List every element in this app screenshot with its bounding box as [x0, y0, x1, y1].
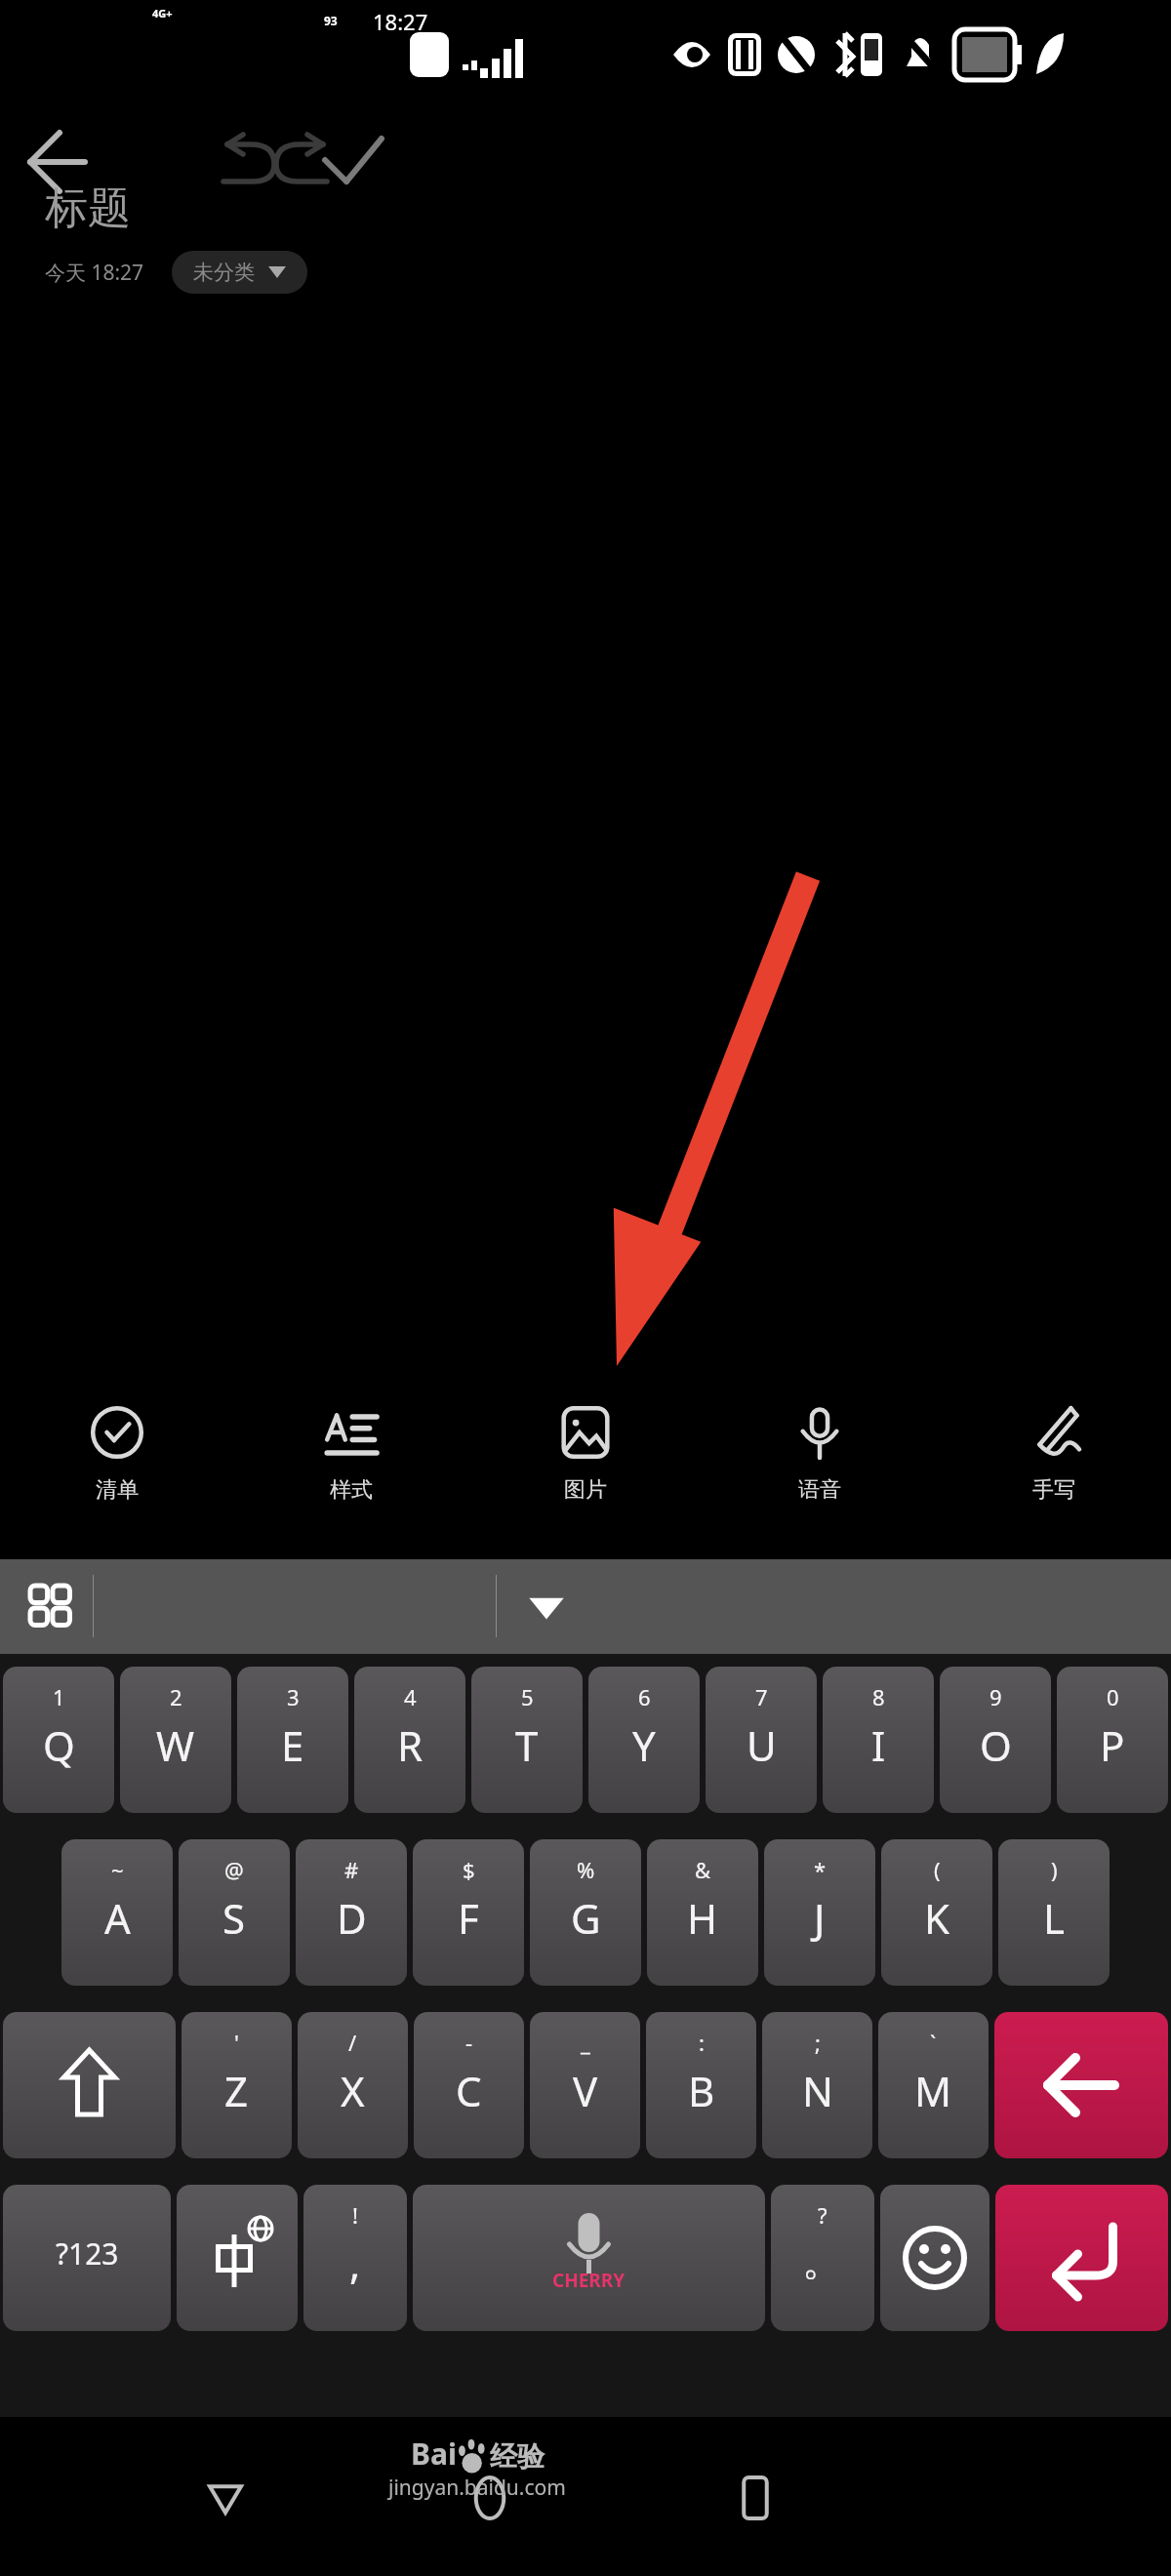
staticText: &: [695, 1855, 711, 1884]
button[interactable]: @: [179, 1839, 290, 1986]
staticText: 7: [755, 1682, 768, 1711]
staticText: !: [352, 2200, 358, 2230]
staticText: 5: [521, 1682, 534, 1711]
staticText: HD: [138, 14, 155, 29]
button[interactable]: 图片: [468, 1390, 703, 1556]
button[interactable]: Recents: [716, 2459, 794, 2537]
staticText: *: [814, 1855, 827, 1884]
button[interactable]: 4: [354, 1667, 465, 1813]
staticText: 标题: [45, 181, 131, 235]
staticText: 样式: [330, 1476, 373, 1504]
button[interactable]: 手写: [937, 1390, 1171, 1556]
staticText: ': [234, 2028, 239, 2057]
staticText: ?: [818, 2200, 828, 2230]
button[interactable]: $: [413, 1839, 524, 1986]
button[interactable]: 2: [120, 1667, 231, 1813]
staticText: 2: [170, 1682, 182, 1711]
button[interactable]: 5: [471, 1667, 583, 1813]
staticText: 0: [1107, 1682, 1119, 1711]
button[interactable]: *: [764, 1839, 875, 1986]
staticText: 4: [404, 1682, 417, 1711]
staticText: :: [699, 2028, 705, 2057]
button[interactable]: #: [296, 1839, 407, 1986]
staticText: 。: [802, 2235, 843, 2287]
button[interactable]: !: [303, 2185, 407, 2331]
button[interactable]: Back: [20, 124, 96, 200]
staticText: T: [515, 1717, 539, 1773]
button[interactable]: 7: [706, 1667, 817, 1813]
staticText: $: [463, 1855, 475, 1884]
staticText: W: [156, 1717, 195, 1773]
staticText: @: [224, 1855, 244, 1884]
staticText: V: [573, 2063, 598, 2118]
button[interactable]: 清单: [0, 1390, 234, 1556]
staticText: 9: [989, 1682, 1002, 1711]
button[interactable]: Home: [451, 2459, 529, 2537]
staticText: F: [458, 1890, 479, 1946]
staticText: H: [687, 1890, 718, 1946]
staticText: %: [577, 1855, 595, 1884]
button[interactable]: %: [530, 1839, 641, 1986]
staticText: 1: [53, 1682, 65, 1711]
button[interactable]: (: [881, 1839, 992, 1986]
button[interactable]: Enter: [995, 2185, 1168, 2331]
button[interactable]: ?123: [3, 2185, 171, 2331]
button[interactable]: ;: [762, 2012, 872, 2158]
staticText: A: [104, 1890, 131, 1946]
staticText: L: [1043, 1890, 1066, 1946]
button[interactable]: Hide keyboard: [521, 1581, 572, 1631]
button[interactable]: Back: [186, 2459, 264, 2537]
staticText: 手写: [1032, 1476, 1075, 1504]
button[interactable]: 样式: [234, 1390, 468, 1556]
button[interactable]: 未分类: [172, 251, 307, 294]
staticText: 语音: [798, 1476, 841, 1504]
staticText: 18:27: [373, 7, 428, 36]
button[interactable]: Undo: [211, 124, 287, 200]
button[interactable]: Emoji: [880, 2185, 989, 2331]
staticText: Y: [632, 1717, 656, 1773]
button[interactable]: 3: [237, 1667, 348, 1813]
staticText: CHERRY: [552, 2268, 626, 2293]
button[interactable]: 1: [3, 1667, 114, 1813]
staticText: B: [688, 2063, 715, 2118]
staticText: D: [337, 1890, 367, 1946]
button[interactable]: :: [646, 2012, 756, 2158]
button[interactable]: ~: [61, 1839, 173, 1986]
staticText: M: [914, 2063, 952, 2118]
staticText: ?123: [56, 2234, 119, 2274]
button[interactable]: Shift: [3, 2012, 176, 2158]
staticText: I: [871, 1717, 886, 1773]
staticText: -: [465, 2028, 473, 2057]
button[interactable]: 9: [940, 1667, 1051, 1813]
button[interactable]: -: [414, 2012, 524, 2158]
button[interactable]: ): [998, 1839, 1110, 1986]
button[interactable]: 语音: [703, 1390, 937, 1556]
button[interactable]: Language: [177, 2185, 298, 2331]
staticText: /: [348, 2028, 357, 2057]
staticText: 93: [324, 13, 338, 28]
staticText: 8: [872, 1682, 885, 1711]
staticText: P: [1100, 1717, 1125, 1773]
staticText: 清单: [96, 1476, 139, 1504]
button[interactable]: ': [182, 2012, 292, 2158]
staticText: Q: [43, 1717, 75, 1773]
button[interactable]: `: [878, 2012, 989, 2158]
button[interactable]: 6: [588, 1667, 700, 1813]
button[interactable]: Space: [413, 2185, 765, 2331]
staticText: 经验: [490, 2439, 545, 2474]
button[interactable]: ?: [771, 2185, 874, 2331]
staticText: #: [344, 1855, 359, 1884]
staticText: N: [802, 2063, 833, 2118]
button[interactable]: &: [647, 1839, 758, 1986]
button[interactable]: 0: [1057, 1667, 1168, 1813]
button[interactable]: Backspace: [994, 2012, 1168, 2158]
button[interactable]: Done: [314, 124, 390, 200]
button[interactable]: /: [298, 2012, 408, 2158]
staticText: (: [934, 1855, 941, 1884]
staticText: J: [814, 1890, 826, 1946]
button[interactable]: Keyboard menu: [30, 1586, 73, 1629]
button[interactable]: 8: [823, 1667, 934, 1813]
button[interactable]: _: [530, 2012, 640, 2158]
button[interactable]: Redo: [263, 124, 340, 200]
staticText: 未分类: [193, 260, 255, 285]
